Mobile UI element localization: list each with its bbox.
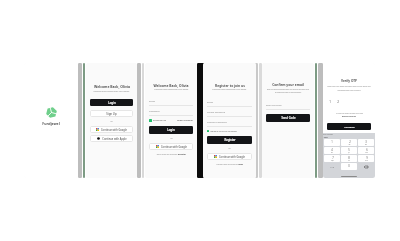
staticText: Register to join us xyxy=(215,83,245,87)
staticText: Continue xyxy=(344,125,355,128)
button[interactable]: Continue with Apple xyxy=(90,135,133,142)
staticText: ABC xyxy=(348,144,351,145)
button[interactable]: Continue xyxy=(327,123,371,130)
button[interactable] xyxy=(207,130,209,132)
button[interactable]: 3 xyxy=(358,139,374,146)
staticText: Login xyxy=(108,101,116,105)
staticText: Resend in 00:59 xyxy=(342,115,356,117)
button[interactable]: Continue with Google xyxy=(90,126,133,133)
staticText: PQRS xyxy=(331,160,334,161)
staticText: Login xyxy=(167,128,175,132)
button[interactable]: Enter your email xyxy=(266,104,310,110)
staticText: 4 xyxy=(331,148,333,152)
staticText: 0 xyxy=(348,164,350,168)
button[interactable]: 1 xyxy=(327,99,333,105)
staticText: Email xyxy=(207,101,252,104)
staticText: 2 xyxy=(349,140,351,144)
button[interactable]: + * # xyxy=(324,163,340,170)
staticText: Fundjewel xyxy=(42,121,60,126)
button[interactable]: 1 xyxy=(324,139,340,146)
staticText: + * # xyxy=(330,166,334,168)
staticText: WXYZ xyxy=(365,160,368,161)
button[interactable]: 2 xyxy=(335,99,341,105)
staticText: Welcome back! Please enter your details. xyxy=(154,88,189,90)
staticText: Welcome Back, Olivia xyxy=(153,83,189,87)
staticText: 1 xyxy=(329,100,331,104)
staticText: 1 xyxy=(331,140,333,144)
button[interactable]: Send Code xyxy=(266,114,310,122)
staticText: Continue with Apple xyxy=(102,137,127,140)
staticText: 7 xyxy=(332,156,334,160)
button[interactable]: Continue with Google xyxy=(207,153,252,160)
button[interactable]: Register xyxy=(207,136,252,144)
staticText: Register xyxy=(224,138,236,142)
staticText: or xyxy=(170,137,173,140)
staticText: 5 xyxy=(348,148,350,152)
staticText: From Messages xyxy=(323,134,333,136)
staticText: DEF xyxy=(365,144,367,145)
staticText: Send Code xyxy=(281,116,296,120)
staticText: Password xyxy=(149,110,193,113)
staticText: MNO xyxy=(365,152,368,153)
staticText: Remember me xyxy=(153,119,167,122)
staticText: Login xyxy=(238,163,243,165)
button[interactable]: 4 xyxy=(324,147,340,154)
staticText: Continue with Google xyxy=(101,128,127,131)
staticText: Enter your OTP which has been sent to yo… xyxy=(327,85,371,91)
button[interactable]: Login xyxy=(149,126,193,134)
staticText: Register xyxy=(178,153,186,156)
staticText: Confirm Password xyxy=(207,121,252,124)
staticText: Enter your email xyxy=(266,104,310,107)
staticText: Confirm your email xyxy=(272,82,304,86)
button[interactable]: 2 xyxy=(341,139,357,146)
staticText: Welcome back! Please enter your details. xyxy=(93,90,130,93)
staticText: 3 xyxy=(365,140,367,144)
button[interactable]: 6 xyxy=(358,147,374,154)
staticText: Enter the email associated with your acc… xyxy=(266,88,310,94)
staticText: 9 xyxy=(366,156,368,160)
button[interactable]: 8 xyxy=(341,155,357,162)
staticText: Email xyxy=(149,100,193,103)
staticText: 8 xyxy=(348,156,350,160)
button[interactable]: Continue with Google xyxy=(149,143,193,150)
staticText: Welcome back! Please enter your details. xyxy=(212,88,247,90)
button[interactable]: 7 xyxy=(324,155,340,162)
staticText: I agree to Terms and Conditions xyxy=(210,130,237,132)
button[interactable]: 9 xyxy=(358,155,374,162)
button[interactable]: Login xyxy=(90,99,133,106)
staticText: Forgot password? xyxy=(176,119,193,122)
staticText: In case you didn't receive your code xyxy=(336,112,363,114)
staticText: Create Password xyxy=(207,111,252,114)
button[interactable] xyxy=(358,163,374,170)
staticText: Continue with Google xyxy=(219,155,245,158)
staticText: or xyxy=(228,147,231,150)
button[interactable]: 0 xyxy=(341,163,357,170)
staticText: 6 xyxy=(366,148,368,152)
staticText: 2 xyxy=(337,100,339,104)
staticText: Welcome Back, Olivia xyxy=(94,84,130,89)
staticText: Sign Up xyxy=(106,112,117,116)
staticText: Already have an account? xyxy=(216,163,238,165)
button[interactable]: 5 xyxy=(341,147,357,154)
staticText: JKL xyxy=(348,152,350,153)
staticText: Continue with Google xyxy=(161,145,187,148)
button[interactable]: Sign Up xyxy=(90,110,133,117)
staticText: or xyxy=(110,120,113,123)
staticText: GHI xyxy=(331,152,333,153)
staticText: Don't have an account? xyxy=(156,153,178,156)
staticText: Verify OTP xyxy=(341,79,357,83)
button[interactable] xyxy=(149,119,152,122)
staticText: 1234 xyxy=(323,136,328,138)
